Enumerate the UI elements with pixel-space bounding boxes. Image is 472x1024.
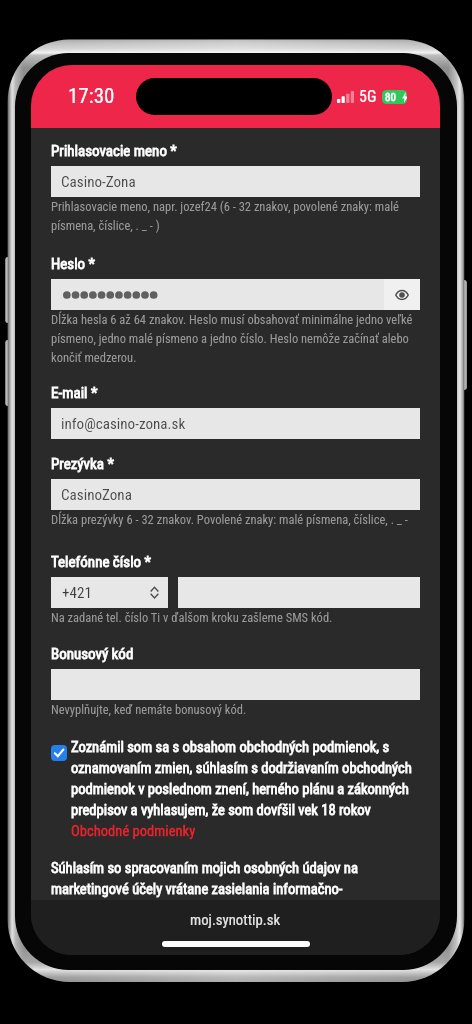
staticText: Casino-Zona bbox=[61, 173, 136, 191]
staticText: info@casino-zona.sk bbox=[61, 415, 186, 433]
staticText: CasinoZona bbox=[61, 486, 132, 504]
staticText: Nevyplňujte, keď nemáte bonusový kód. bbox=[51, 702, 420, 717]
button[interactable]: info@casino-zona.sk bbox=[51, 408, 420, 439]
staticText: 80 bbox=[385, 91, 396, 104]
staticText: Na zadané tel. číslo Ti v ďalšom kroku z… bbox=[51, 610, 420, 625]
staticText: Prihlasovacie meno, napr. jozef24 (6 - 3… bbox=[51, 199, 420, 233]
staticText: 5G bbox=[359, 87, 377, 106]
button[interactable]: Show password bbox=[51, 279, 420, 310]
button[interactable]: CasinoZona bbox=[51, 479, 420, 510]
staticText: Heslo * bbox=[51, 255, 96, 273]
staticText: Prihlasovacie meno * bbox=[51, 142, 177, 160]
button[interactable]: Casino-Zona bbox=[51, 166, 420, 197]
button[interactable]: Obchodné podmienky bbox=[71, 822, 196, 839]
staticText: E-mail * bbox=[51, 384, 98, 402]
button[interactable]: Show password bbox=[384, 279, 420, 310]
staticText: Telefónne číslo * bbox=[51, 553, 152, 571]
staticText: Súhlasím so spracovaním mojich osobných … bbox=[51, 859, 420, 897]
staticText: Dĺžka hesla 6 až 64 znakov. Heslo musí o… bbox=[51, 312, 420, 365]
staticText: moj.synottip.sk bbox=[190, 911, 281, 928]
staticText: Prezývka * bbox=[51, 455, 114, 473]
staticText: Bonusový kód bbox=[51, 645, 134, 663]
staticText: +421 bbox=[62, 584, 150, 602]
staticText: 17:30 bbox=[68, 84, 115, 109]
button[interactable]: +421 bbox=[51, 577, 168, 608]
staticText: Dĺžka prezývky 6 - 32 znakov. Povolené z… bbox=[51, 512, 420, 527]
button[interactable]: Zoznámil som sa s obsahom obchodných pod… bbox=[51, 738, 420, 839]
staticText: Zoznámil som sa s obsahom obchodných pod… bbox=[71, 738, 420, 818]
